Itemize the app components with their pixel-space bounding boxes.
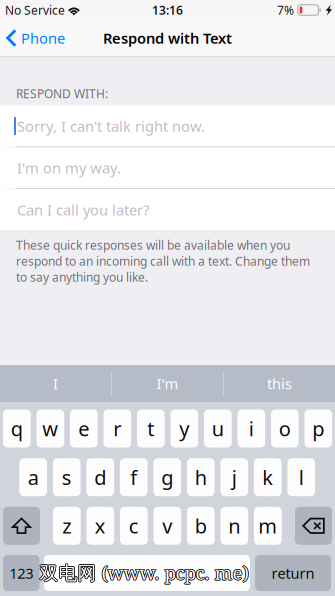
button[interactable]: b	[187, 507, 215, 545]
button[interactable]: j	[220, 458, 248, 496]
staticText: d	[94, 464, 106, 490]
staticText: 双电网 (www. pcpc. me)	[39, 560, 248, 585]
staticText: 双电网 (www. pcpc. me)	[39, 561, 248, 586]
button[interactable]: s	[53, 458, 81, 496]
staticText: this	[267, 374, 292, 393]
button[interactable]: h	[187, 458, 215, 496]
staticText: r	[113, 415, 121, 442]
staticText: g	[161, 464, 173, 490]
button[interactable]: c	[120, 507, 148, 545]
button[interactable]: return	[255, 555, 331, 591]
staticText: Sorry, I can't talk right now.	[17, 116, 205, 136]
staticText: v	[162, 512, 172, 539]
button[interactable]: Can I call you later?	[0, 189, 335, 230]
button[interactable]: 123	[3, 555, 39, 591]
button[interactable]: Phone	[0, 20, 73, 56]
staticText: 123	[9, 563, 33, 583]
button[interactable]: y	[170, 409, 198, 447]
button[interactable]: v	[153, 507, 181, 545]
staticText: p	[312, 415, 324, 442]
staticText: i	[249, 415, 254, 442]
staticText: j	[232, 464, 237, 490]
staticText: I'm on my way.	[17, 158, 121, 178]
staticText: 双电网 (www. pcpc. me)	[40, 560, 249, 586]
button[interactable]: n	[220, 507, 248, 545]
button[interactable]: z	[53, 507, 81, 545]
staticText: y	[179, 415, 189, 442]
button[interactable]: d	[86, 458, 114, 496]
staticText: 双电网 (www. pcpc. me)	[39, 559, 248, 584]
button[interactable]: Sorry, I can't talk right now.	[0, 106, 335, 147]
staticText: I	[53, 374, 58, 393]
staticText: 双电网 (www. pcpc. me)	[39, 560, 248, 586]
staticText: 7%	[277, 2, 294, 18]
button[interactable]: I'm on my way.	[0, 147, 335, 188]
staticText: b	[195, 512, 207, 539]
staticText: Phone	[21, 28, 65, 48]
button[interactable]: r	[103, 409, 131, 447]
staticText: h	[195, 464, 207, 490]
button[interactable]: q	[3, 409, 31, 447]
button[interactable]: g	[153, 458, 181, 496]
staticText: RESPOND WITH:	[16, 86, 108, 102]
button[interactable]: a	[19, 458, 47, 496]
staticText: Can I call you later?	[17, 200, 149, 219]
button[interactable]: space	[44, 555, 250, 591]
button[interactable]: I'm	[112, 365, 223, 402]
staticText: 双电网 (www. pcpc. me)	[39, 560, 248, 585]
staticText: 13:16	[152, 2, 183, 18]
button[interactable]: o	[271, 409, 299, 447]
staticText: 双电网 (www. pcpc. me)	[39, 559, 248, 585]
button[interactable]: l	[287, 458, 315, 496]
staticText: q	[11, 415, 23, 442]
button[interactable]: e	[70, 409, 98, 447]
staticText: t	[147, 415, 154, 442]
button[interactable]: Shift	[3, 507, 40, 545]
staticText: 双电网 (www. pcpc. me)	[40, 559, 249, 585]
staticText: These quick responses will be available …	[16, 237, 310, 285]
staticText: w	[42, 415, 58, 442]
staticText: s	[62, 464, 72, 490]
staticText: l	[299, 464, 304, 490]
staticText: No Service	[5, 2, 65, 18]
staticText: Respond with Text	[103, 28, 232, 48]
button[interactable]: x	[86, 507, 114, 545]
staticText: 双电网 (www. pcpc. me)	[40, 560, 249, 585]
staticText: return	[271, 563, 314, 583]
staticText: f	[130, 464, 137, 490]
staticText: c	[129, 512, 139, 539]
staticText: m	[258, 512, 277, 539]
button[interactable]: p	[304, 409, 332, 447]
button[interactable]: k	[254, 458, 282, 496]
staticText: I'm	[156, 374, 178, 393]
button[interactable]: u	[204, 409, 232, 447]
staticText: o	[279, 415, 291, 442]
button[interactable]: Delete	[295, 507, 332, 545]
button[interactable]: this	[224, 365, 335, 402]
button[interactable]: i	[237, 409, 265, 447]
staticText: x	[95, 512, 106, 539]
staticText: k	[262, 464, 273, 490]
button[interactable]: m	[254, 507, 282, 545]
button[interactable]: I	[0, 365, 111, 402]
staticText: z	[62, 512, 71, 539]
staticText: e	[78, 415, 89, 442]
button[interactable]: t	[137, 409, 165, 447]
staticText: a	[28, 464, 39, 490]
button[interactable]: w	[36, 409, 64, 447]
staticText: u	[212, 415, 224, 442]
button[interactable]: f	[120, 458, 148, 496]
staticText: n	[228, 512, 240, 539]
